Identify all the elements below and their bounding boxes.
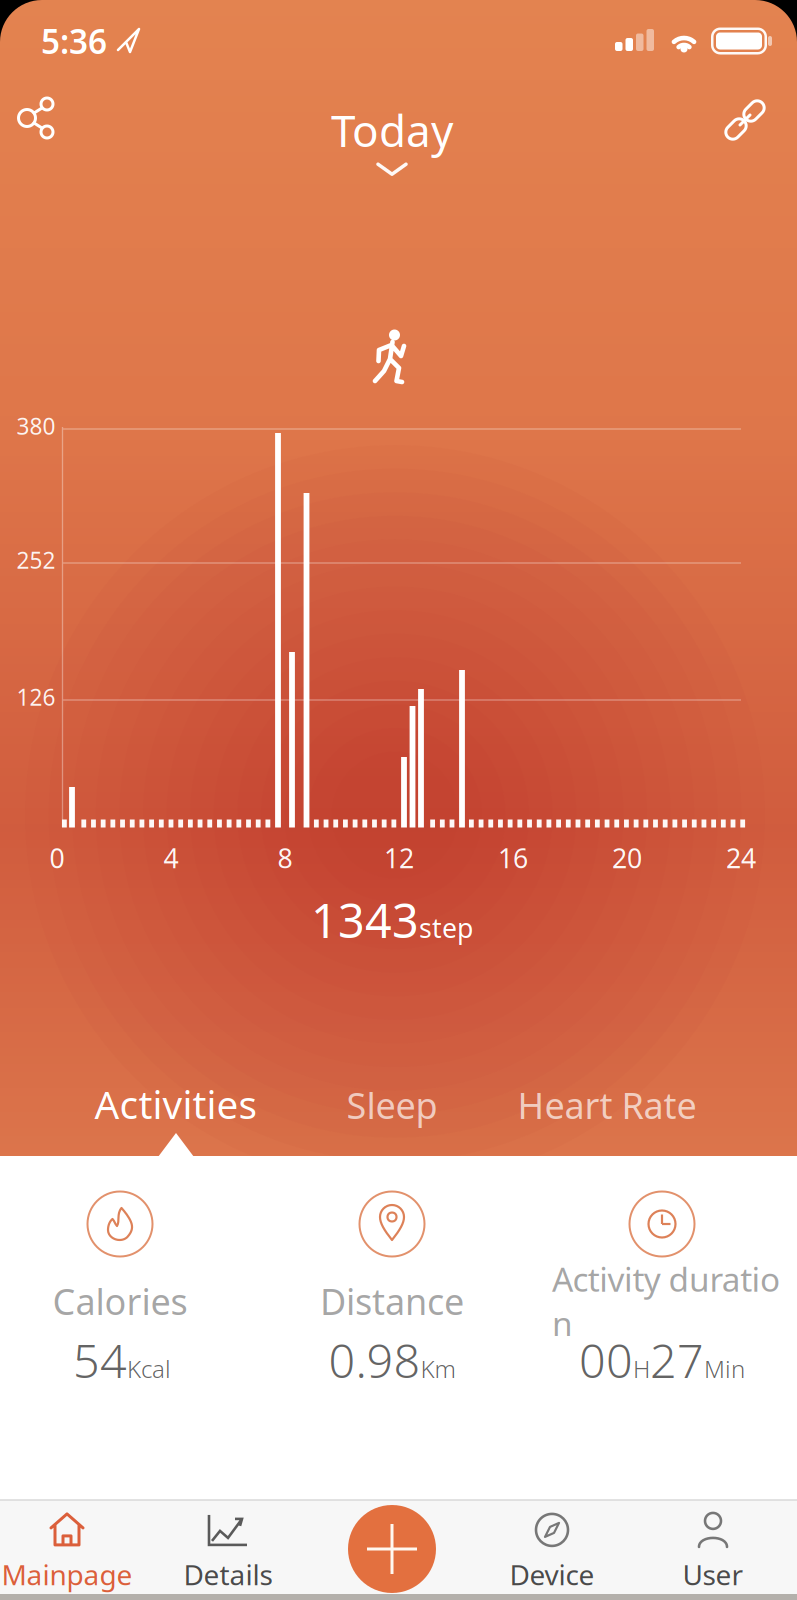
- staticText: Activity duratio n: [552, 1257, 780, 1345]
- staticText: 00H27Min: [579, 1329, 745, 1391]
- staticText: 0: [49, 840, 64, 876]
- staticText: 20: [612, 840, 642, 876]
- staticText: 54Kcal: [73, 1329, 171, 1391]
- staticText: Calories: [52, 1277, 187, 1325]
- staticText: Details: [183, 1556, 272, 1593]
- staticText: Today: [331, 101, 453, 159]
- staticText: Mainpage: [1, 1556, 132, 1593]
- staticText: 126: [16, 682, 55, 712]
- staticText: Sleep: [346, 1081, 437, 1129]
- staticText: Activities: [94, 1078, 257, 1130]
- button[interactable]: Sleep: [334, 1073, 449, 1137]
- button[interactable]: Share: [10, 91, 66, 147]
- staticText: Distance: [320, 1277, 464, 1325]
- staticText: 1343step: [311, 889, 473, 951]
- button[interactable]: Heart Rate: [505, 1073, 708, 1137]
- staticText: Heart Rate: [517, 1081, 696, 1129]
- staticText: 0.98Km: [328, 1329, 455, 1391]
- staticText: User: [682, 1556, 743, 1593]
- staticText: Device: [509, 1556, 594, 1593]
- button[interactable]: Details: [183, 1511, 272, 1593]
- staticText: 16: [498, 840, 528, 876]
- button[interactable]: Select date: [331, 101, 453, 177]
- button[interactable]: Activities: [82, 1070, 269, 1138]
- button[interactable]: User: [682, 1511, 743, 1593]
- staticText: 8: [277, 840, 292, 876]
- button[interactable]: Device: [509, 1511, 594, 1593]
- button[interactable]: Add: [348, 1505, 436, 1593]
- button[interactable]: Link: [717, 92, 773, 148]
- staticText: 5:36: [41, 19, 107, 63]
- button[interactable]: Mainpage: [1, 1511, 132, 1593]
- staticText: 4: [163, 840, 178, 876]
- staticText: 24: [726, 840, 756, 876]
- staticText: 380: [16, 411, 55, 441]
- staticText: 252: [16, 545, 55, 575]
- staticText: 12: [384, 840, 414, 876]
